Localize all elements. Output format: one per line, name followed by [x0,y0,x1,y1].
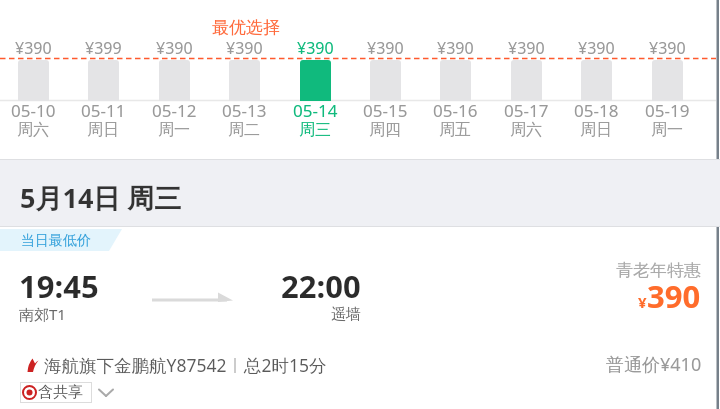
staticText: ¥390 [367,37,404,59]
staticText: 南郊T1 [19,304,66,324]
staticText: 周三 [299,120,331,140]
staticText: 05-10 [11,99,56,122]
staticText: 05-14 [293,99,338,122]
button[interactable]: ¥390 [491,0,561,138]
staticText: ¥390 [15,37,52,59]
staticText: 周五 [439,120,471,140]
staticText: ¥390 [649,37,686,59]
staticText: 青老年特惠 [616,260,701,281]
staticText: 05-11 [81,99,126,122]
staticText: 05-18 [574,99,619,122]
button[interactable]: ¥390 [139,0,209,138]
button[interactable]: ¥390 [209,0,279,138]
button[interactable]: ¥390 [632,0,702,138]
staticText: ¥390 [508,37,545,59]
staticText: 周六 [17,120,49,140]
staticText: ¥390 [226,37,263,59]
staticText: 当日最低价 [21,232,91,250]
staticText: 05-16 [433,99,478,122]
staticText: 普通价¥410 [606,352,702,377]
button[interactable]: ¥390 [561,0,631,138]
staticText: 05-17 [504,99,549,122]
staticText: ¥390 [437,37,474,59]
staticText: 周一 [158,120,190,140]
staticText: 5月14日 周三 [20,179,182,216]
staticText: 19:45 [19,265,99,307]
staticText: 05-15 [363,99,408,122]
button[interactable] [0,252,716,409]
staticText: ¥390 [156,37,193,59]
staticText: 05-13 [222,99,267,122]
button[interactable]: ¥390 [350,0,420,138]
staticText: 遥墙 [331,305,361,324]
staticText: 05-12 [152,99,197,122]
staticText: ¥390 [297,37,334,59]
staticText: 含共享 [38,383,83,402]
staticText: 周六 [510,120,542,140]
staticText: 周日 [580,120,612,140]
staticText: 最优选择 [212,17,280,38]
staticText: 22:00 [281,265,361,307]
button[interactable]: ¥390 [0,0,68,138]
staticText: ¥399 [85,37,122,59]
button[interactable]: 含共享 [20,380,92,405]
staticText: 总2时15分 [244,353,327,377]
staticText: 05-19 [645,99,690,122]
staticText: 周日 [87,120,119,140]
staticText: 周一 [651,120,683,140]
staticText: ¥390 [578,37,615,59]
staticText: 390 [647,275,701,317]
button[interactable]: ¥390 [420,0,490,138]
staticText: 周二 [228,120,260,140]
button[interactable]: ¥399 [68,0,138,138]
button[interactable]: ¥390 [280,0,350,138]
staticText: 海航旗下金鹏航Y87542 [44,353,227,377]
staticText: ¥ [638,292,647,312]
staticText: 周四 [369,120,401,140]
